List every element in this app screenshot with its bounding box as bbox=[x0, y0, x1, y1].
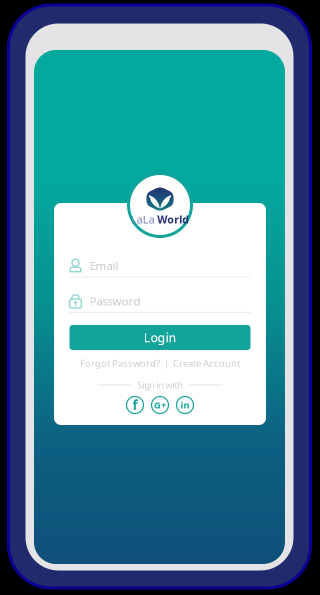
staticText: World bbox=[157, 212, 189, 227]
staticText: LaLa bbox=[131, 212, 155, 227]
button[interactable]: Sign in with Facebook bbox=[126, 396, 143, 413]
button[interactable]: Sign in with Google bbox=[151, 396, 168, 413]
staticText: Create Account bbox=[173, 357, 240, 369]
button[interactable]: Login bbox=[69, 325, 250, 350]
staticText: in bbox=[180, 399, 189, 411]
staticText: f bbox=[132, 396, 137, 414]
staticText: Forgot Password? bbox=[80, 357, 160, 369]
button[interactable]: Create Account bbox=[173, 357, 240, 369]
staticText: Login bbox=[143, 329, 176, 346]
staticText: Email bbox=[89, 258, 118, 273]
staticText: G+ bbox=[154, 399, 166, 411]
staticText: Password bbox=[89, 293, 140, 309]
button[interactable]: Sign in with LinkedIn bbox=[176, 396, 193, 413]
staticText: Sign in with bbox=[137, 379, 182, 391]
staticText: | bbox=[160, 357, 173, 369]
button[interactable]: Forgot Password? bbox=[80, 357, 160, 369]
